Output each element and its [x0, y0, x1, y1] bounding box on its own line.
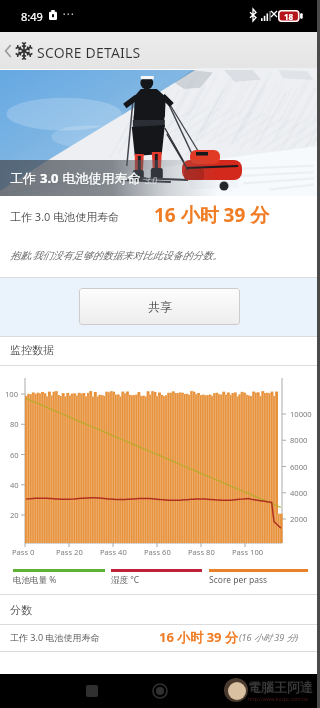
staticText: 40	[10, 480, 19, 490]
staticText: 工作 3.0 电池使用寿命	[10, 631, 100, 643]
staticText: SCORE DETAILS	[37, 43, 141, 62]
staticText: 8000	[290, 435, 308, 445]
staticText: Pass 0	[12, 547, 35, 557]
staticText: 共享	[148, 299, 172, 314]
staticText: 分数	[10, 603, 32, 617]
staticText: 18	[284, 11, 294, 22]
staticText: 20	[10, 510, 19, 520]
staticText: 60	[10, 450, 19, 460]
staticText: 监控数据	[10, 343, 54, 357]
button[interactable]: Back	[0, 32, 16, 70]
button[interactable]: 共享	[79, 288, 240, 325]
staticText: 16 小时 39 分	[159, 628, 238, 646]
button[interactable]: 电池电量 %	[13, 566, 105, 590]
staticText: 80	[10, 419, 19, 429]
staticText: 湿度 °C	[111, 574, 140, 586]
button[interactable]: Home	[128, 674, 192, 708]
staticText: Pass 20	[56, 547, 83, 557]
staticText: 6000	[290, 462, 308, 472]
button[interactable]: Recents	[60, 674, 124, 708]
staticText: 4000	[290, 488, 308, 498]
staticText: 工作 3.0 电池使用寿命	[10, 209, 120, 224]
staticText: 8:49	[21, 9, 43, 24]
staticText: ⋯	[62, 7, 74, 21]
staticText: 工作	[10, 169, 40, 187]
staticText: 10000	[290, 409, 312, 419]
staticText: (16 小时 39 分)	[239, 631, 299, 643]
staticText: 16 小时 39 分	[154, 202, 270, 228]
staticText: Pass 100	[232, 547, 264, 557]
staticText: 电池电量 %	[13, 574, 57, 586]
staticText: Score per pass	[209, 574, 268, 586]
staticText: 3.0	[145, 174, 158, 186]
staticText: 2000	[290, 514, 308, 524]
staticText: Pass 80	[188, 547, 215, 557]
staticText: 电池使用寿命	[59, 169, 141, 187]
staticText: 抱歉,我们没有足够的数据来对比此设备的分数。	[10, 248, 223, 262]
staticText: Pass 40	[100, 547, 127, 557]
staticText: 3.0	[40, 169, 59, 187]
staticText: Pass 60	[144, 547, 171, 557]
staticText: http://www.kocpc.com.tw	[248, 696, 308, 703]
staticText: 電腦王阿達	[248, 679, 313, 695]
button[interactable]: Score per pass	[209, 566, 308, 590]
staticText: 100	[5, 389, 19, 399]
button[interactable]: 湿度 °C	[111, 566, 202, 590]
